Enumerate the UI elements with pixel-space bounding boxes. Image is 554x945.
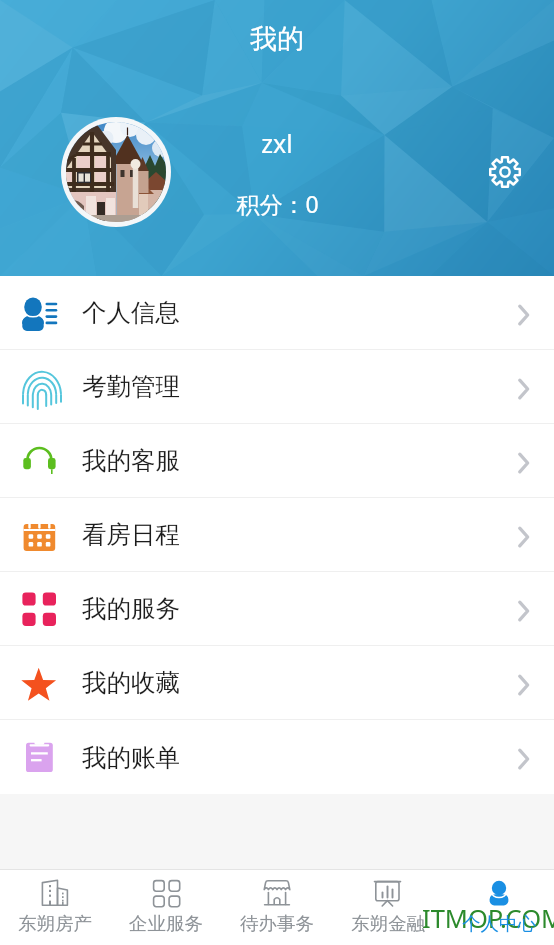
staticText: ITMOP.COM [422, 901, 554, 936]
staticText: 我的服务 [82, 593, 180, 624]
staticText: zxl [261, 126, 293, 160]
button[interactable]: 我的收藏 [0, 646, 554, 719]
button[interactable]: 待办事务 [221, 870, 332, 945]
button[interactable]: 我的账单 [0, 720, 554, 794]
staticText: 我的客服 [82, 445, 180, 476]
button[interactable]: 企业服务 [110, 870, 221, 945]
button[interactable]: Profile photo [61, 117, 171, 227]
staticText: 企业服务 [129, 912, 203, 935]
button[interactable]: Settings [485, 152, 525, 192]
staticText: 看房日程 [82, 519, 180, 550]
staticText: 我的账单 [82, 742, 180, 773]
staticText: 我的 [250, 22, 304, 56]
button[interactable]: 个人信息 [0, 276, 554, 349]
button[interactable]: 考勤管理 [0, 350, 554, 423]
button[interactable]: 东朔房产 [0, 870, 110, 945]
staticText: 待办事务 [240, 912, 314, 935]
button[interactable]: 东朔金融 [332, 870, 443, 945]
staticText: 积分：0 [236, 188, 319, 219]
staticText: 东朔房产 [18, 912, 92, 935]
staticText: 东朔金融 [351, 912, 425, 935]
button[interactable]: 个人中心 [443, 870, 554, 945]
staticText: 考勤管理 [82, 371, 180, 402]
button[interactable]: 我的客服 [0, 424, 554, 497]
button[interactable]: 看房日程 [0, 498, 554, 571]
button[interactable]: 我的服务 [0, 572, 554, 645]
staticText: 个人信息 [82, 297, 180, 328]
staticText: 个人中心 [462, 912, 536, 935]
staticText: 我的收藏 [82, 667, 180, 698]
